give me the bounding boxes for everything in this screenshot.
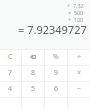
staticText: × 500 xyxy=(68,9,84,16)
button[interactable]: 7 xyxy=(0,65,21,81)
button[interactable]: Backspace xyxy=(22,49,44,65)
staticText: 5 xyxy=(31,84,36,94)
staticText: 9 xyxy=(54,68,59,78)
staticText: × xyxy=(77,68,82,78)
staticText: ÷ 7.32 xyxy=(67,2,84,9)
staticText: 6 xyxy=(54,84,59,94)
other: Backspace xyxy=(30,55,36,59)
staticText: 8 xyxy=(31,68,36,78)
button[interactable]: 9 xyxy=(45,65,67,81)
button[interactable] xyxy=(22,97,44,110)
button[interactable]: C xyxy=(0,49,21,65)
button[interactable] xyxy=(45,97,67,110)
button[interactable] xyxy=(0,97,21,110)
button[interactable]: 8 xyxy=(22,65,44,81)
staticText: C xyxy=(8,52,13,62)
staticText: + 100 xyxy=(68,16,84,23)
button[interactable]: × xyxy=(68,65,90,81)
staticText: = 7.92349727 xyxy=(18,22,87,37)
button[interactable]: 4 xyxy=(0,81,21,97)
button[interactable]: − xyxy=(68,81,90,97)
staticText: ÷ xyxy=(77,52,82,62)
button[interactable] xyxy=(68,97,90,110)
button[interactable]: 6 xyxy=(45,81,67,97)
button[interactable]: % xyxy=(45,49,67,65)
staticText: 4 xyxy=(8,84,13,94)
staticText: 7 xyxy=(8,68,13,78)
staticText: − xyxy=(77,84,82,94)
button[interactable]: 5 xyxy=(22,81,44,97)
button[interactable]: ÷ xyxy=(68,49,90,65)
staticText: % xyxy=(53,52,59,62)
